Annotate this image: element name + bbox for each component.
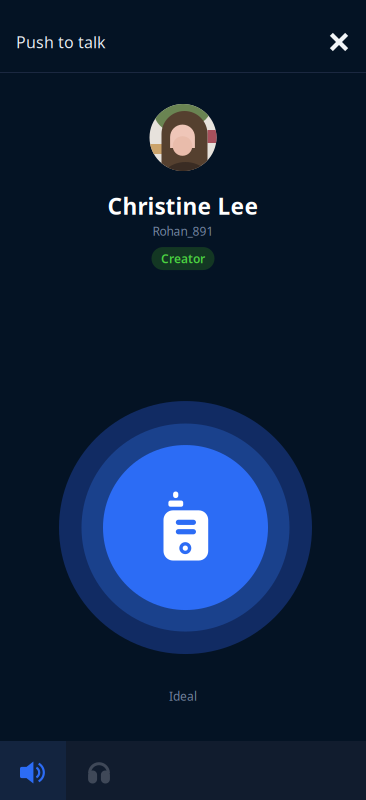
staticText: Rohan_891 <box>152 223 213 239</box>
staticText: Push to talk <box>16 31 106 53</box>
button[interactable]: Close <box>319 22 359 62</box>
staticText: Christine Lee <box>107 191 258 221</box>
button[interactable]: Headphones <box>66 741 132 800</box>
button[interactable]: Push to talk <box>56 401 309 654</box>
staticText: Creator <box>161 251 205 266</box>
button[interactable]: Speaker <box>0 741 66 800</box>
staticText: Ideal <box>169 688 197 704</box>
